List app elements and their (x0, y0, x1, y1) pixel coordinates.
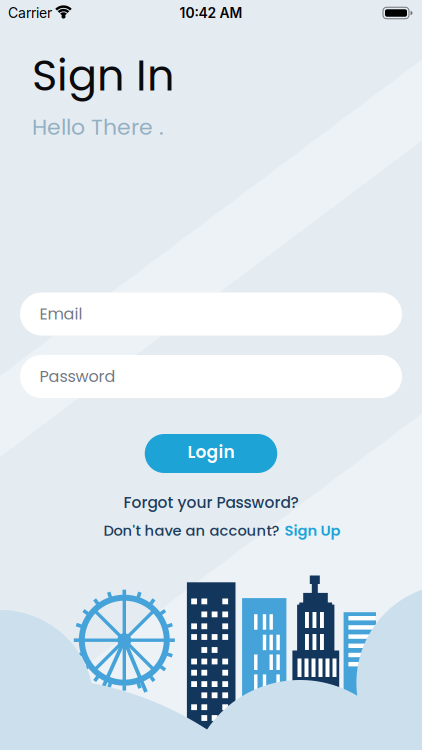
button[interactable]: Login (145, 434, 277, 473)
staticText: Password (39, 365, 115, 388)
staticText: Forgot your Password? (123, 492, 298, 513)
staticText: Carrier (8, 4, 52, 21)
staticText: Hello There . (32, 112, 164, 142)
staticText: Sign In (32, 45, 175, 106)
staticText: Don't have an account? (103, 520, 279, 541)
button[interactable]: Email (20, 292, 402, 335)
staticText: Email (39, 303, 82, 325)
staticText: Login (187, 440, 234, 464)
staticText: 10:42 AM (179, 5, 242, 21)
button[interactable]: Sign Up (284, 520, 340, 541)
button[interactable]: Forgot your Password? (123, 492, 298, 513)
button[interactable]: Password (20, 355, 402, 398)
staticText: Sign Up (284, 520, 340, 541)
